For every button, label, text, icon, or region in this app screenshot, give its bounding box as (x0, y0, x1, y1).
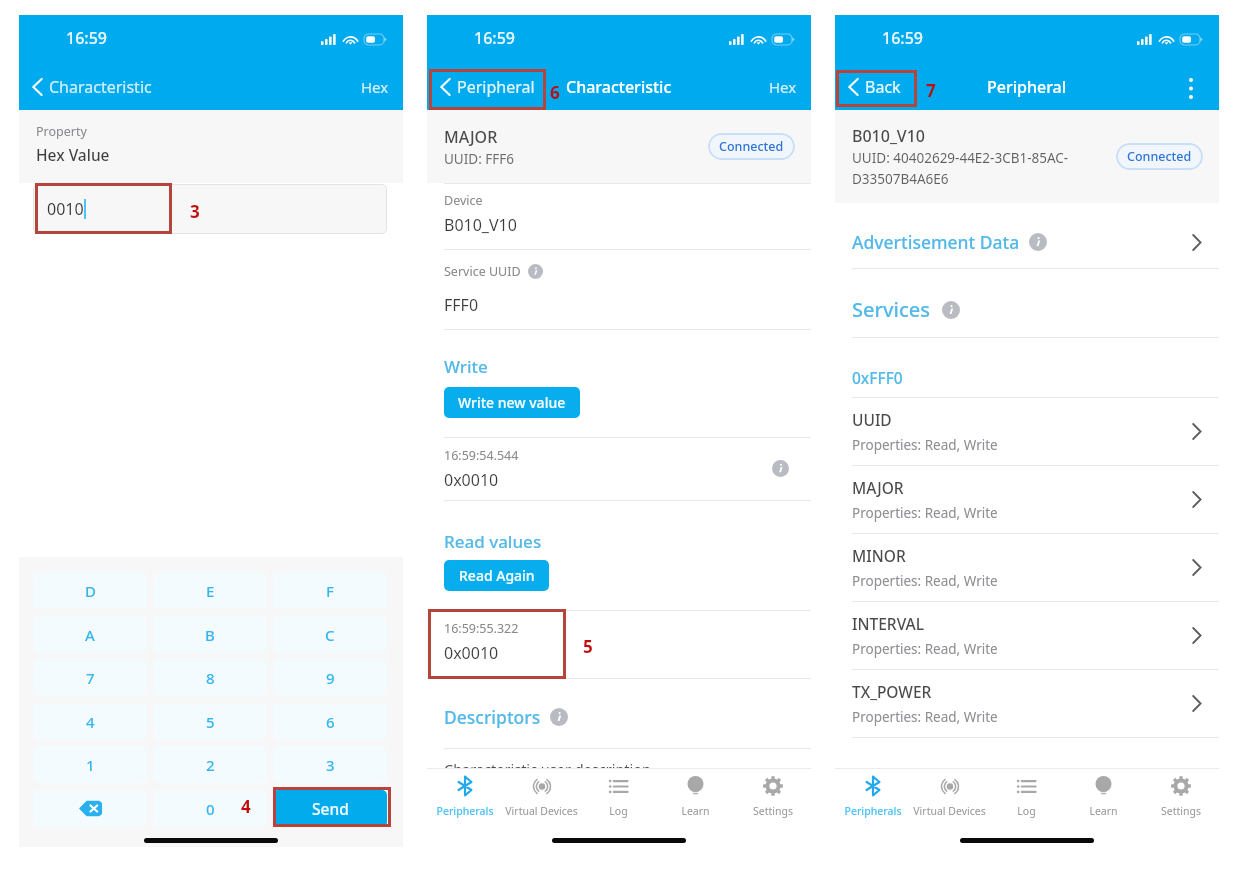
staticText: Properties: Read, Write (852, 436, 998, 454)
staticText: Service UUID (444, 263, 521, 280)
button[interactable]: Backspace (33, 790, 147, 827)
button[interactable]: 1 (33, 746, 147, 783)
staticText: Settings (753, 804, 793, 818)
button[interactable]: Settings (1142, 769, 1219, 821)
button[interactable]: MINOR (835, 533, 1219, 601)
staticText: Write new value (458, 393, 566, 412)
button[interactable]: Learn (657, 769, 734, 821)
staticText: Services (852, 296, 930, 323)
staticText: Log (1017, 804, 1036, 818)
button[interactable]: Peripheral (436, 70, 539, 104)
staticText: C (325, 625, 335, 645)
button[interactable]: Connected (1116, 143, 1203, 170)
staticText: Log (609, 804, 628, 818)
staticText: 2 (206, 755, 215, 775)
staticText: Connected (719, 138, 784, 155)
staticText: Read Again (459, 566, 535, 585)
staticText: 6 (326, 712, 335, 732)
staticText: Properties: Read, Write (852, 572, 998, 590)
button[interactable]: UUID (835, 397, 1219, 465)
button[interactable]: Peripherals (835, 769, 911, 821)
button[interactable]: 5 (153, 703, 267, 740)
staticText: Hex (769, 77, 797, 97)
staticText: TX_POWER (852, 681, 932, 702)
button[interactable]: Hex (347, 69, 403, 105)
staticText: 4 (241, 795, 251, 818)
staticText: Device (444, 192, 483, 209)
button[interactable]: More options (1175, 68, 1219, 105)
staticText: Back (865, 76, 901, 98)
button[interactable]: 3 (273, 746, 387, 783)
staticText: 16:59:55.322 (444, 620, 519, 637)
button[interactable]: INTERVAL (835, 601, 1219, 669)
staticText: Properties: Read, Write (852, 708, 998, 726)
staticText: Write (444, 355, 488, 378)
staticText: UUID: 40402629-44E2-3CB1-85AC-D33507B4A6… (852, 149, 1117, 188)
button[interactable]: Log (988, 769, 1065, 821)
staticText: 8 (206, 668, 215, 688)
staticText: UUID: FFF6 (444, 150, 515, 168)
staticText: B010_V10 (444, 214, 517, 236)
staticText: Characteristic user description (444, 759, 652, 779)
button[interactable]: MAJOR (835, 465, 1219, 533)
staticText: Settings (1161, 804, 1201, 818)
staticText: Property (36, 123, 87, 140)
staticText: Learn (1089, 804, 1118, 818)
staticText: Properties: Read, Write (852, 640, 998, 658)
button[interactable]: A (33, 616, 147, 653)
button[interactable]: 2 (153, 746, 267, 783)
staticText: D (85, 581, 96, 601)
staticText: MAJOR (444, 126, 498, 148)
button[interactable]: Advertisement Data (835, 221, 1219, 263)
button[interactable]: 0 (153, 790, 267, 827)
button[interactable]: 9 (273, 659, 387, 696)
button[interactable]: Value info (766, 454, 794, 482)
button[interactable]: Virtual Devices (911, 769, 988, 821)
staticText: 6 (550, 81, 560, 104)
staticText: 0x0010 (444, 469, 499, 491)
staticText: 3 (326, 755, 335, 775)
button[interactable]: Settings (734, 769, 811, 821)
button[interactable]: TX_POWER (835, 669, 1219, 737)
staticText: FFF0 (444, 294, 479, 316)
button[interactable]: Peripherals (427, 769, 503, 821)
staticText: 4 (86, 712, 95, 732)
staticText: 16:59:54.544 (444, 447, 519, 464)
button[interactable]: E (153, 572, 267, 609)
staticText: Read values (444, 530, 542, 553)
button[interactable]: Hex (755, 69, 811, 105)
staticText: Virtual Devices (913, 804, 986, 818)
button[interactable]: Log (580, 769, 657, 821)
button[interactable]: 7 (33, 659, 147, 696)
button[interactable]: C (273, 616, 387, 653)
staticText: Learn (681, 804, 710, 818)
button[interactable]: Connected (708, 133, 795, 160)
button[interactable]: 8 (153, 659, 267, 696)
staticText: Peripheral (457, 76, 535, 98)
staticText: INTERVAL (852, 613, 924, 634)
staticText: 16:59 (474, 27, 515, 49)
staticText: B (205, 625, 215, 645)
button[interactable]: Learn (1065, 769, 1142, 821)
staticText: MAJOR (852, 477, 904, 498)
button[interactable]: 6 (273, 703, 387, 740)
button[interactable]: Back (844, 70, 905, 104)
button[interactable]: D (33, 572, 147, 609)
button[interactable]: B (153, 616, 267, 653)
staticText: Peripherals (436, 804, 494, 818)
staticText: 7 (926, 79, 936, 102)
button[interactable]: Write new value (444, 387, 580, 418)
button[interactable]: Read Again (444, 560, 549, 591)
staticText: 7 (86, 668, 95, 688)
button[interactable]: 4 (33, 703, 147, 740)
button[interactable]: Send (273, 790, 387, 827)
staticText: UUID (852, 409, 892, 430)
staticText: Send (312, 798, 349, 819)
staticText: E (206, 581, 215, 601)
staticText: Properties: Read, Write (852, 504, 998, 522)
button[interactable]: 0010 (33, 184, 387, 234)
button[interactable]: Virtual Devices (503, 769, 580, 821)
button[interactable]: Characteristic (28, 70, 156, 104)
button[interactable]: F (273, 572, 387, 609)
staticText: 5 (583, 635, 593, 658)
